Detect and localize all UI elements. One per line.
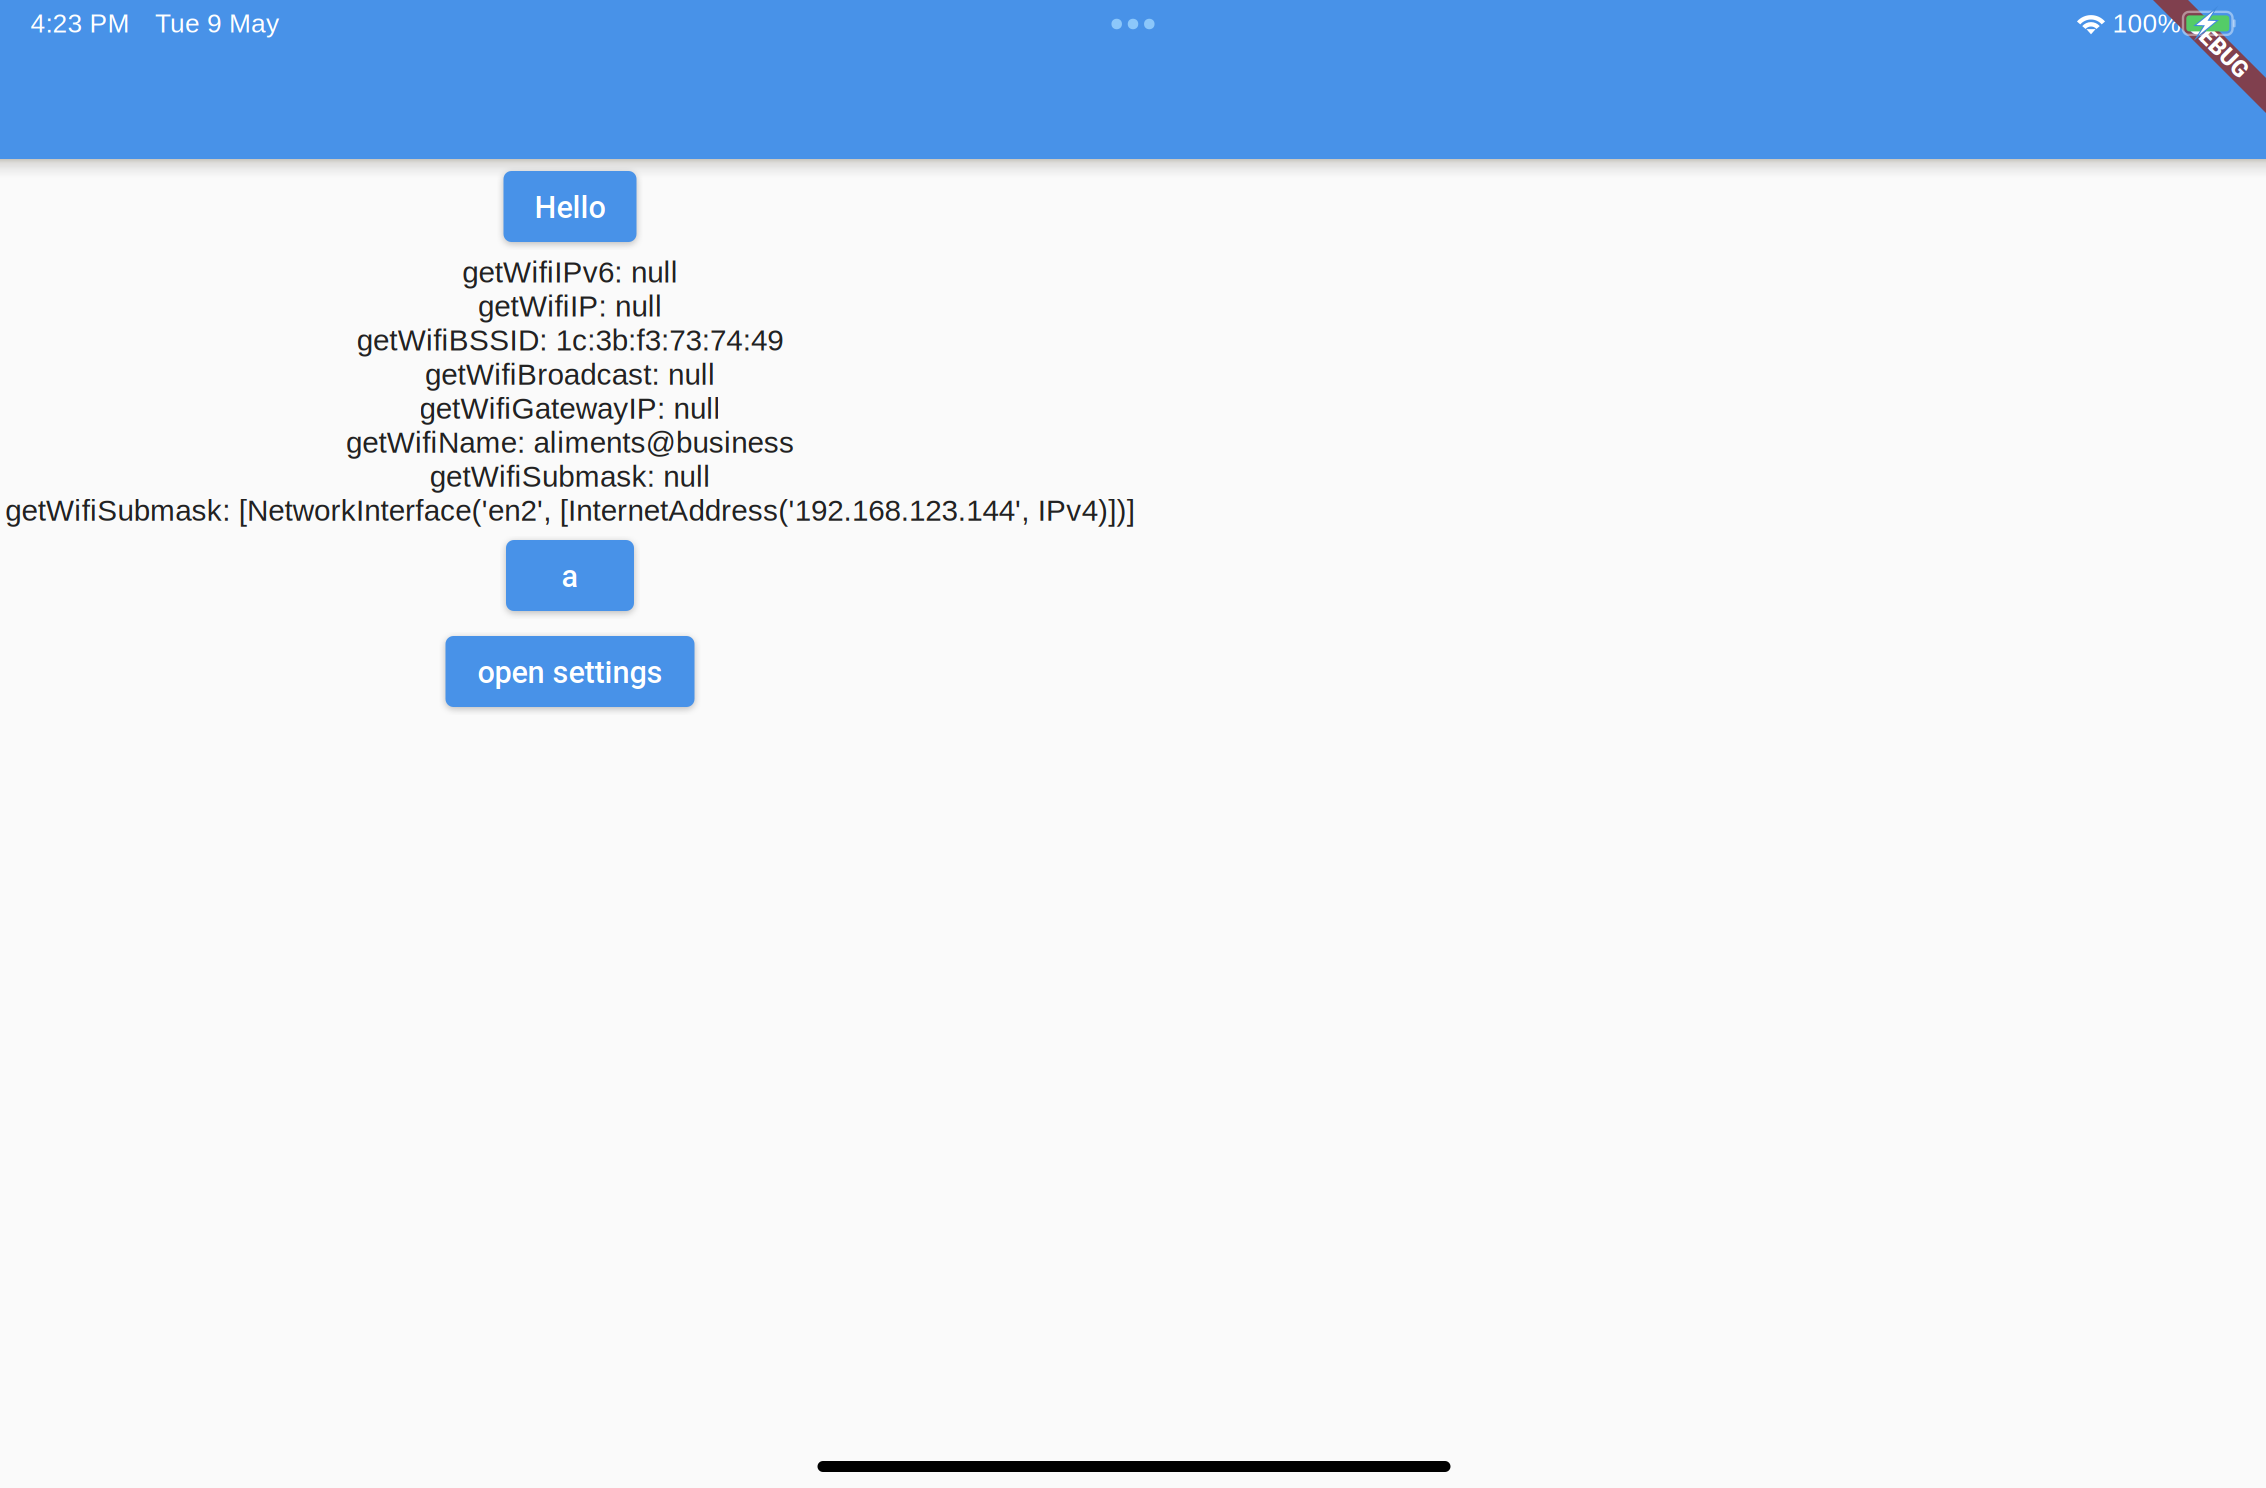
staticText: getWifiBSSID: 1c:3b:f3:73:74:49 [357,324,783,357]
staticText: getWifiName: aliments@business [346,426,794,459]
button[interactable]: Hello [503,171,636,242]
staticText: getWifiIP: null [478,290,662,323]
staticText: 100% [2112,9,2180,38]
staticText: open settings [477,654,662,690]
staticText: getWifiSubmask: null [430,460,710,493]
staticText: DEBUG [2182,34,2255,61]
staticText: Tue 9 May [155,9,279,38]
staticText: getWifiSubmask: [NetworkInterface('en2',… [5,494,1135,527]
staticText: Hello [534,189,605,225]
staticText: getWifiGatewayIP: null [420,392,720,425]
staticText: 4:23 PM [30,9,129,38]
staticText: getWifiBroadcast: null [425,358,715,391]
staticText: a [561,558,578,594]
button[interactable]: a [506,540,634,611]
button[interactable]: open settings [445,636,694,707]
staticText: getWifiIPv6: null [462,256,678,289]
